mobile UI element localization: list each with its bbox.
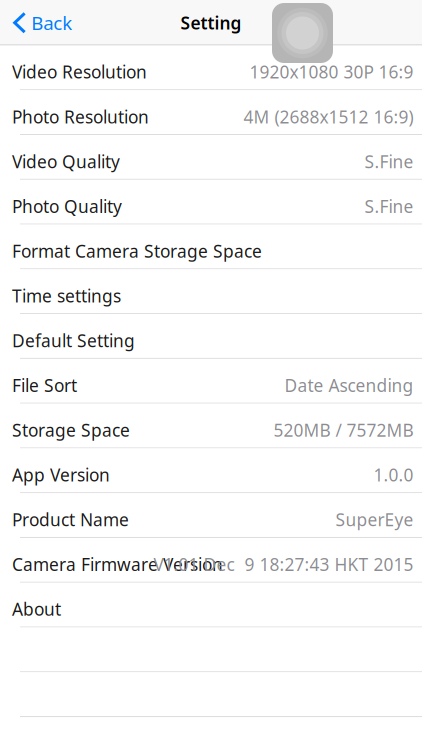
staticText: Storage Space: [12, 418, 130, 441]
staticText: About: [12, 598, 61, 621]
staticText: Format Camera Storage Space: [12, 239, 262, 262]
staticText: Photo Quality: [12, 195, 122, 218]
staticText: File Sort: [12, 374, 77, 397]
button[interactable]: [0, 627, 422, 672]
staticText: Camera Firmware Version: [12, 553, 223, 576]
button[interactable]: File Sort: [0, 359, 422, 404]
button[interactable]: Camera Firmware Version: [0, 538, 422, 583]
button[interactable]: Video Quality: [0, 135, 422, 180]
staticText: Video Quality: [12, 150, 120, 173]
button[interactable]: Product Name: [0, 493, 422, 538]
staticText: 520MB / 7572MB: [273, 418, 413, 441]
button[interactable]: Photo Quality: [0, 180, 422, 225]
button[interactable]: Format Camera Storage Space: [0, 225, 422, 269]
staticText: S.Fine: [364, 150, 413, 173]
button[interactable]: Default Setting: [0, 314, 422, 359]
staticText: Setting: [180, 11, 241, 34]
staticText: Video Resolution: [12, 60, 147, 83]
staticText: Date Ascending: [284, 374, 413, 397]
staticText: Photo Resolution: [12, 105, 149, 128]
button[interactable]: Back: [0, 0, 82, 45]
button[interactable]: App Version: [0, 448, 422, 493]
staticText: Time settings: [12, 284, 121, 307]
staticText: S.Fine: [364, 195, 413, 218]
staticText: Product Name: [12, 508, 129, 531]
button[interactable]: Video Resolution: [0, 45, 422, 90]
staticText: Default Setting: [12, 329, 135, 352]
staticText: App Version: [12, 463, 110, 486]
button[interactable]: Time settings: [0, 269, 422, 314]
staticText: V1.01 Dec 9 18:27:43 HKT 2015: [153, 553, 413, 576]
button[interactable]: Photo Resolution: [0, 90, 422, 135]
staticText: Back: [31, 10, 72, 35]
staticText: 1.0.0: [373, 463, 413, 486]
staticText: SuperEye: [335, 508, 413, 531]
button[interactable]: Storage Space: [0, 404, 422, 448]
button[interactable]: [0, 672, 422, 717]
staticText: 4M (2688x1512 16:9): [243, 105, 413, 128]
button[interactable]: About: [0, 583, 422, 627]
staticText: 1920x1080 30P 16:9: [249, 60, 413, 83]
